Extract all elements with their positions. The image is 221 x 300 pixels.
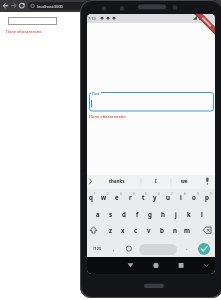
staticText: d [122,210,126,218]
staticText: o [192,193,196,201]
staticText: i [180,193,182,201]
button[interactable]: i [175,192,187,202]
button[interactable] [0,0,9,12]
button[interactable]: o [188,192,200,202]
staticText: t [142,193,145,201]
staticText: , [113,245,115,252]
staticText: 7:13 [88,16,96,21]
staticText: o [192,193,196,201]
button[interactable]: y [149,192,161,202]
staticText: r [129,193,132,201]
staticText: thanks [109,178,125,185]
staticText: a [96,210,100,218]
button[interactable]: p [201,192,213,202]
staticText: p [205,193,209,201]
staticText: w [101,193,107,201]
staticText: 7 [171,192,173,196]
button[interactable]: g [144,209,156,219]
button[interactable] [149,258,163,273]
button[interactable] [9,0,17,12]
staticText: x [121,226,125,234]
staticText: ?123 [93,246,101,251]
button[interactable] [139,244,177,255]
staticText: 9 [197,192,199,196]
button[interactable] [17,0,26,12]
staticText: h [161,210,165,218]
button[interactable]: r [124,192,136,202]
button[interactable]: u [162,192,174,202]
staticText: r [129,193,132,201]
staticText: u [166,193,170,201]
button[interactable]: b [156,225,168,235]
button[interactable]: v [143,225,155,235]
staticText: p [205,193,209,201]
button[interactable]: f [131,209,143,219]
staticText: 1 [94,192,96,196]
staticText: s [109,210,113,218]
staticText: 8 [184,192,186,196]
button[interactable] [198,243,210,255]
staticText: Поле обязательно [6,29,42,34]
button[interactable]: we [177,176,191,186]
staticText: we [181,178,188,185]
staticText: s [109,210,113,218]
staticText: . [186,244,188,251]
button[interactable]: a [92,209,104,219]
staticText: 6 [158,192,160,196]
button[interactable] [123,258,137,273]
staticText: q [89,193,93,201]
staticText: ?123 [93,246,101,251]
button[interactable]: t [137,192,149,202]
staticText: localhost:3000 [37,4,63,9]
button[interactable]: , [110,243,118,253]
staticText: z [109,226,112,234]
button[interactable]: m [181,225,193,235]
staticText: g [148,210,152,218]
staticText: v [147,226,151,234]
staticText: 2 [107,192,109,196]
staticText: g [148,210,152,218]
button[interactable]: thanks [105,176,129,186]
button[interactable] [90,93,214,112]
staticText: we [181,178,188,185]
staticText: k [187,210,191,218]
button[interactable]: x [117,225,129,235]
button[interactable]: s [105,209,117,219]
staticText: 5 [145,192,147,196]
staticText: n [173,226,177,234]
staticText: h [161,210,165,218]
button[interactable]: e [111,192,123,202]
button[interactable]: localhost:3000 [28,2,102,10]
staticText: z [109,226,112,234]
staticText: b [160,226,164,234]
staticText: j [175,210,177,218]
button[interactable]: ?123 [90,243,104,253]
button[interactable]: z [104,225,116,235]
button[interactable]: I [149,176,163,186]
button[interactable]: . [183,242,191,252]
staticText: I [155,178,157,185]
staticText: y [153,193,157,201]
button[interactable]: n [169,225,181,235]
staticText: w [101,193,107,201]
staticText: q [89,193,93,201]
staticText: a [96,210,100,218]
staticText: u [166,193,170,201]
button[interactable]: j [170,209,182,219]
button[interactable]: h [157,209,169,219]
staticText: y [153,193,157,201]
button[interactable]: d [118,209,130,219]
staticText: x [121,226,125,234]
button[interactable]: k [183,209,195,219]
button[interactable] [8,17,57,25]
button[interactable]: w [98,192,110,202]
button[interactable]: q [87,192,97,202]
staticText: v [147,226,151,234]
staticText: 3 [120,192,122,196]
button[interactable]: l [196,209,208,219]
button[interactable] [174,258,188,273]
staticText: b [160,226,164,234]
button[interactable]: c [130,225,142,235]
staticText: j [175,210,177,218]
staticText: t [142,193,145,201]
